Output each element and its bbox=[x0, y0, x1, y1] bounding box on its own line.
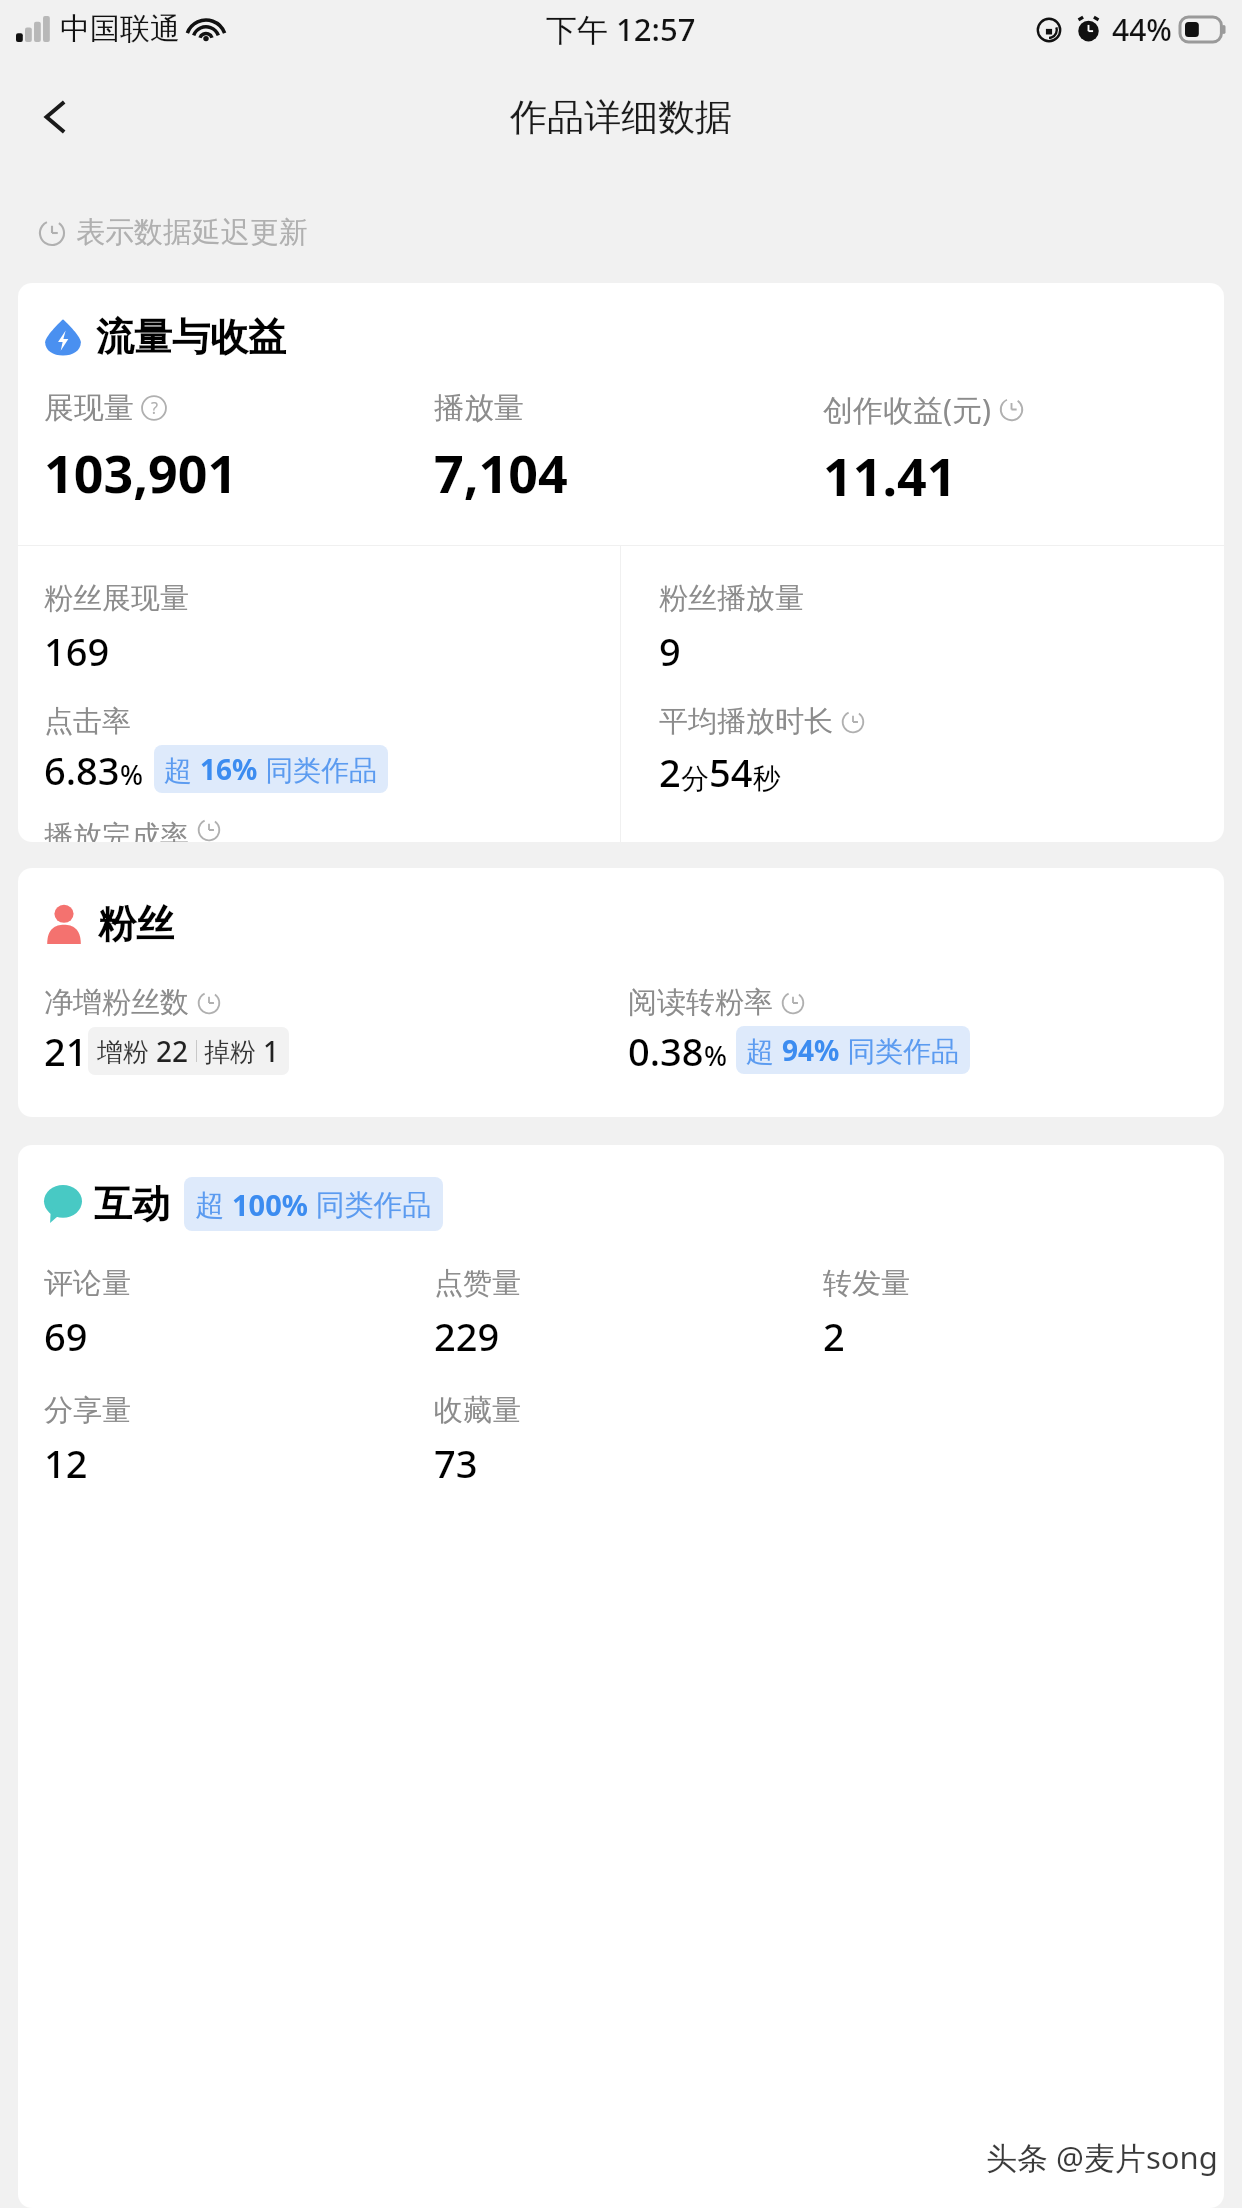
button[interactable]: 创作收益(元) bbox=[823, 389, 1212, 511]
staticText: 12 bbox=[44, 1437, 88, 1489]
button[interactable]: 收藏量 bbox=[434, 1392, 823, 1489]
staticText: 点赞量 bbox=[434, 1265, 521, 1302]
staticText: 54 bbox=[709, 746, 753, 798]
button[interactable]: 播放量 bbox=[434, 389, 823, 508]
button[interactable]: 转发量 bbox=[823, 1265, 1212, 1362]
staticText: 6.83 bbox=[44, 744, 120, 796]
staticText: 评论量 bbox=[44, 1265, 131, 1302]
button[interactable]: 阅读转粉率 bbox=[628, 984, 1212, 1077]
staticText: 互动 bbox=[94, 1180, 170, 1228]
staticText: 0.38 bbox=[628, 1025, 704, 1077]
staticText: 播放完成率 bbox=[44, 818, 189, 842]
staticText: 16% bbox=[200, 750, 258, 788]
button[interactable]: 点击率 bbox=[44, 703, 388, 796]
staticText: 作品详细数据 bbox=[510, 94, 732, 141]
button[interactable]: 粉丝播放量 bbox=[659, 580, 804, 677]
staticText: 阅读转粉率 bbox=[628, 984, 773, 1021]
staticText: 平均播放时长 bbox=[659, 703, 833, 740]
staticText: 展现量 bbox=[44, 389, 134, 427]
staticText: 1 bbox=[263, 1032, 280, 1070]
staticText: 创作收益(元) bbox=[823, 389, 991, 430]
staticText: 22 bbox=[156, 1032, 189, 1070]
button[interactable]: 净增粉丝数 bbox=[44, 984, 628, 1077]
button[interactable]: 粉丝展现量 bbox=[44, 580, 189, 677]
staticText: 同类作品 bbox=[308, 1184, 432, 1224]
staticText: 秒 bbox=[753, 761, 781, 796]
staticText: 分享量 bbox=[44, 1392, 131, 1429]
staticText: 转发量 bbox=[823, 1265, 910, 1302]
staticText: 点击率 bbox=[44, 703, 131, 740]
staticText: 增粉 bbox=[97, 1033, 156, 1069]
button[interactable]: 点赞量 bbox=[434, 1265, 823, 1362]
staticText: 169 bbox=[44, 625, 110, 677]
staticText: ? bbox=[151, 397, 158, 419]
button[interactable]: 超 bbox=[154, 745, 388, 793]
staticText: 超 bbox=[195, 1184, 232, 1224]
staticText: 超 bbox=[746, 1031, 782, 1069]
staticText: 44% bbox=[1112, 9, 1172, 50]
button[interactable]: Back bbox=[18, 79, 94, 155]
staticText: 9 bbox=[659, 625, 681, 677]
staticText: 同类作品 bbox=[258, 750, 378, 788]
staticText: % bbox=[704, 1037, 728, 1074]
staticText: 73 bbox=[434, 1437, 478, 1489]
staticText: 净增粉丝数 bbox=[44, 984, 189, 1021]
button[interactable]: 超 bbox=[184, 1177, 443, 1231]
staticText: 分 bbox=[681, 761, 709, 796]
staticText: 收藏量 bbox=[434, 1392, 521, 1429]
staticText: 同类作品 bbox=[840, 1031, 960, 1069]
staticText: 粉丝展现量 bbox=[44, 580, 189, 617]
button[interactable]: 平均播放时长 bbox=[659, 703, 865, 798]
button[interactable]: 分享量 bbox=[44, 1392, 434, 1489]
staticText: 超 bbox=[164, 750, 200, 788]
staticText: % bbox=[120, 756, 144, 793]
staticText: 100% bbox=[232, 1185, 308, 1224]
staticText: 粉丝 bbox=[98, 900, 174, 948]
staticText: 103,901 bbox=[44, 437, 238, 508]
staticText: 表示数据延迟更新 bbox=[76, 214, 308, 251]
staticText: 229 bbox=[434, 1310, 500, 1362]
staticText: 中国联通 bbox=[60, 10, 180, 48]
staticText: 7,104 bbox=[434, 437, 568, 508]
button[interactable]: 超 bbox=[736, 1026, 970, 1074]
button[interactable]: 播放完成率 bbox=[44, 818, 408, 842]
staticText: 21 bbox=[44, 1025, 88, 1077]
staticText: 2 bbox=[823, 1310, 845, 1362]
button[interactable]: 展现量 bbox=[44, 389, 434, 508]
staticText: 11.41 bbox=[823, 440, 957, 511]
staticText: 粉丝播放量 bbox=[659, 580, 804, 617]
staticText: 69 bbox=[44, 1310, 88, 1362]
staticText: 流量与收益 bbox=[96, 313, 286, 361]
staticText: 播放量 bbox=[434, 389, 524, 427]
button[interactable]: 评论量 bbox=[44, 1265, 434, 1362]
staticText: 下午 12:57 bbox=[546, 8, 696, 50]
staticText: 94% bbox=[782, 1031, 840, 1069]
staticText: 2 bbox=[659, 746, 681, 798]
staticText: 头条 @麦片song bbox=[986, 2136, 1218, 2178]
staticText: 掉粉 bbox=[204, 1033, 263, 1069]
